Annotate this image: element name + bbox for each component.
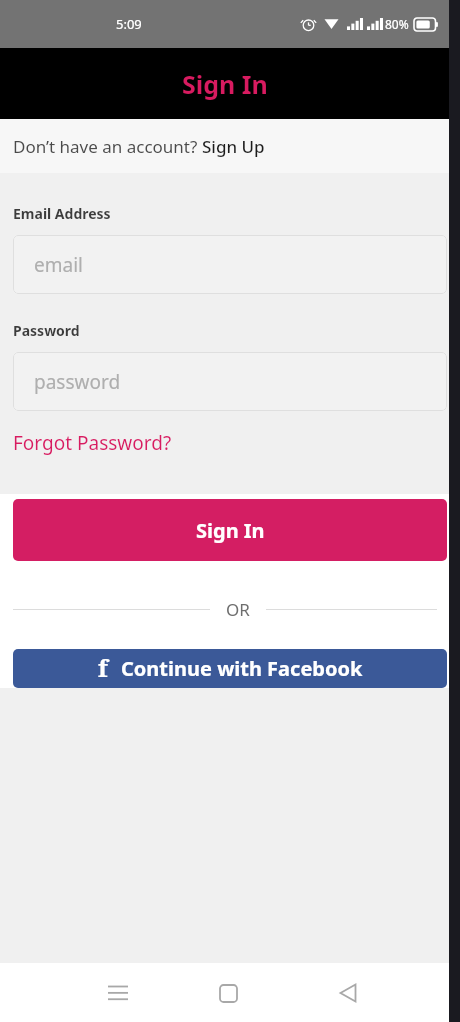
button[interactable]: email	[13, 235, 447, 294]
button[interactable]: f	[13, 649, 447, 688]
staticText: password	[34, 369, 121, 395]
button[interactable]: Sign In	[13, 499, 447, 561]
button[interactable]: password	[13, 352, 447, 411]
staticText: f	[98, 651, 108, 684]
staticText: Email Address	[13, 204, 111, 223]
staticText: Forgot Password?	[13, 430, 172, 456]
staticText: email	[34, 252, 83, 278]
staticText: OR	[226, 598, 250, 621]
staticText: Sign In	[196, 517, 265, 544]
button[interactable]: Home	[208, 973, 248, 1013]
staticText: 80%	[385, 16, 409, 32]
button[interactable]: Forgot Password?	[13, 430, 172, 456]
button[interactable]: Sign In	[0, 48, 460, 119]
button[interactable]: Don’t have an account?	[0, 119, 460, 173]
button[interactable]: Recent apps	[98, 973, 138, 1013]
staticText: Password	[13, 321, 80, 340]
staticText: Sign Up	[202, 135, 265, 158]
staticText: 5:09	[116, 15, 142, 33]
staticText: Don’t have an account?	[13, 135, 202, 158]
staticText: Continue with Facebook	[121, 655, 363, 682]
button[interactable]: Back	[328, 973, 368, 1013]
staticText: Sign In	[182, 67, 268, 101]
